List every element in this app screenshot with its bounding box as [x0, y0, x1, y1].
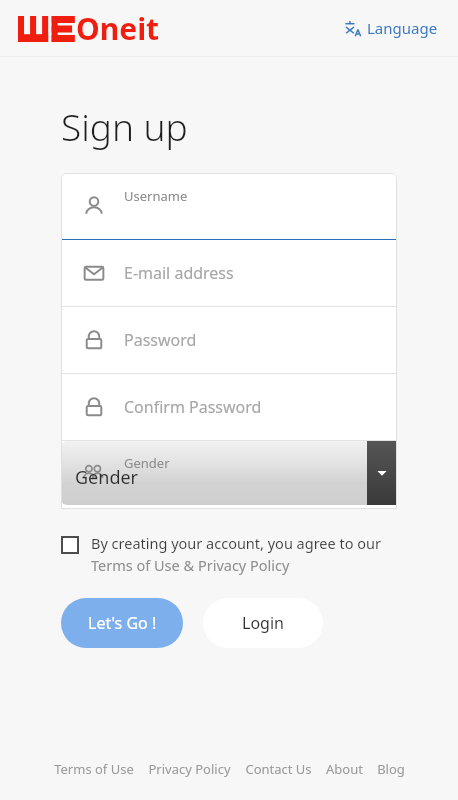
button[interactable]: Confirm Password — [61, 374, 397, 441]
button[interactable]: Let's Go ! — [61, 598, 183, 648]
button[interactable]: Blog — [370, 756, 412, 782]
button[interactable]: Gender selector — [61, 441, 397, 509]
staticText: Confirm Password — [124, 396, 262, 418]
button[interactable]: Terms of Use — [47, 756, 141, 782]
staticText: E-mail address — [124, 262, 234, 284]
staticText: By creating your account, you agree to o… — [91, 533, 381, 553]
staticText: Blog — [377, 760, 405, 778]
button[interactable]: Contact Us — [238, 756, 319, 782]
button[interactable]: Password — [61, 307, 397, 374]
staticText: About — [326, 760, 363, 778]
button[interactable]: Login — [203, 598, 323, 648]
button[interactable]: By creating your account, you agree to o… — [61, 533, 381, 575]
staticText: Contact Us — [245, 760, 312, 778]
staticText: Gender — [124, 454, 170, 472]
button[interactable]: About — [319, 756, 370, 782]
staticText: Language — [367, 18, 438, 38]
staticText: Terms of Use & Privacy Policy — [91, 555, 290, 575]
staticText: Sign up — [61, 101, 188, 151]
button[interactable]: Language — [342, 14, 440, 42]
staticText: Oneit — [76, 8, 160, 49]
button[interactable]: E-mail address — [61, 240, 397, 307]
staticText: Gender — [75, 465, 139, 490]
staticText: Let's Go ! — [88, 612, 157, 634]
staticText: Username — [124, 187, 188, 205]
button[interactable]: Username — [61, 173, 397, 240]
staticText: Privacy Policy — [148, 760, 231, 778]
button[interactable]: Privacy Policy — [141, 756, 238, 782]
staticText: Password — [124, 329, 197, 351]
button[interactable]: WE Oneit home — [18, 8, 160, 49]
staticText: Terms of Use — [54, 760, 134, 778]
staticText: Login — [242, 612, 284, 634]
